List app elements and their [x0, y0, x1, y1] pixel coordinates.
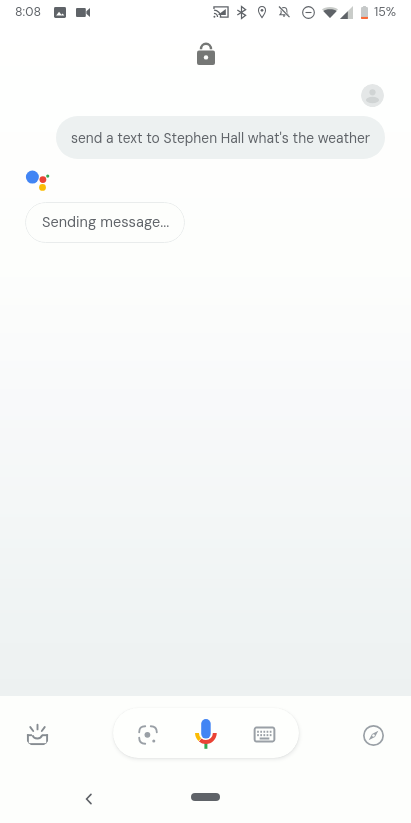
staticText: 15%: [374, 4, 397, 20]
button[interactable]: Voice search: [191, 716, 221, 752]
button[interactable]: Keyboard: [252, 722, 277, 747]
button[interactable]: Snapshot: [25, 722, 50, 747]
button[interactable]: Google Lens: [135, 722, 160, 747]
staticText: Sending message...: [42, 213, 170, 232]
button[interactable]: Account: [361, 84, 384, 107]
button[interactable]: Back: [79, 789, 99, 809]
button[interactable]: Home: [191, 793, 220, 801]
staticText: 8:08: [15, 4, 41, 20]
button[interactable]: Sending message...: [25, 202, 185, 243]
button[interactable]: send a text to Stephen Hall what's the w…: [56, 116, 385, 159]
staticText: send a text to Stephen Hall what's the w…: [71, 129, 371, 147]
button[interactable]: Explore: [361, 723, 386, 748]
